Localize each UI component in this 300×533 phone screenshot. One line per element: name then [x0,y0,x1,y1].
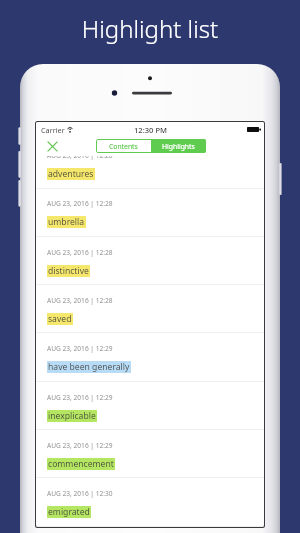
button[interactable]: AUG 23, 2016 | 12:28 [36,188,264,236]
button[interactable]: AUG 23, 2016 | 12:28 [36,285,264,333]
button[interactable]: Contents [96,139,151,153]
button[interactable]: Highlights [151,139,206,153]
button[interactable]: AUG 23, 2016 | 12:29 [36,382,264,430]
staticText: umbrella [48,216,85,228]
staticText: adventures [48,168,94,180]
staticText: inexplicable [48,410,96,422]
button[interactable]: AUG 23, 2016 | 12:28 [36,140,264,188]
button[interactable]: Close [43,137,62,156]
button[interactable]: AUG 23, 2016 | 12:30 [36,478,264,526]
staticText: AUG 23, 2016 | 12:28 [47,248,113,257]
staticText: Carrier [41,125,65,135]
staticText: Highlight list [0,12,300,45]
button[interactable]: AUG 23, 2016 | 12:29 [36,430,264,478]
staticText: distinctive [48,265,89,277]
staticText: AUG 23, 2016 | 12:28 [47,199,113,208]
button[interactable]: AUG 23, 2016 | 12:28 [36,237,264,285]
staticText: emigrated [48,506,90,518]
staticText: AUG 23, 2016 | 12:30 [47,489,113,498]
staticText: AUG 23, 2016 | 12:28 [47,296,113,305]
staticText: Highlights [162,142,195,151]
staticText: saved [48,313,72,325]
staticText: have been generally [48,361,130,373]
button[interactable]: AUG 23, 2016 | 12:29 [36,333,264,381]
staticText: commencement [48,458,114,470]
staticText: AUG 23, 2016 | 12:29 [47,441,113,450]
staticText: AUG 23, 2016 | 12:28 [47,151,113,160]
staticText: Contents [109,142,138,151]
staticText: AUG 23, 2016 | 12:29 [47,344,113,353]
staticText: AUG 23, 2016 | 12:29 [47,393,113,402]
staticText: 12:30 PM [134,125,168,135]
